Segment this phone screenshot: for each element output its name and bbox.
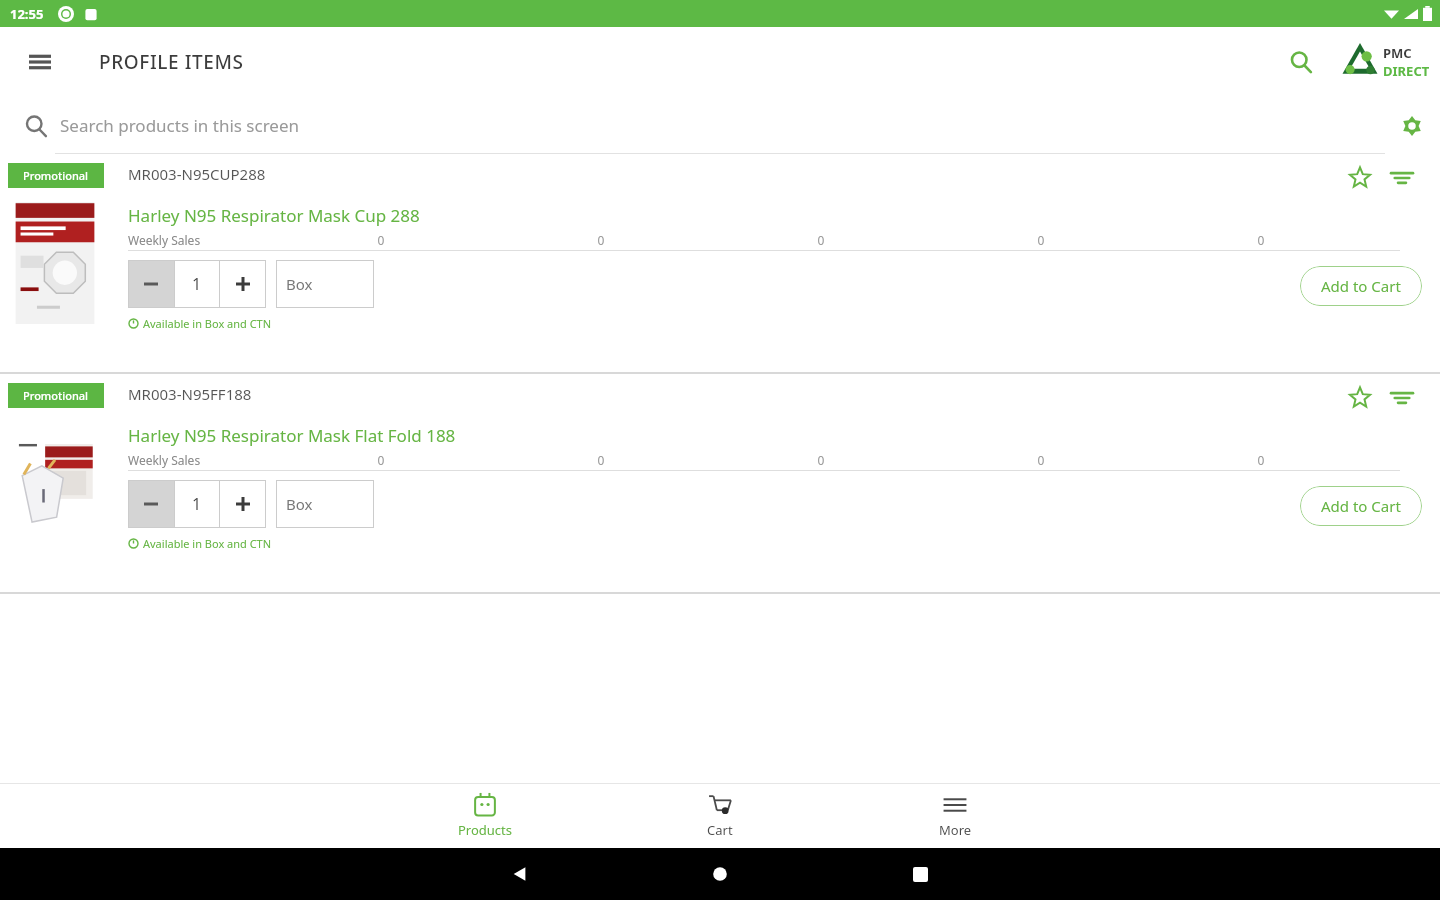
staticText: PMC: [1383, 44, 1412, 62]
staticText: Weekly Sales: [128, 452, 201, 468]
staticText: Available in Box and CTN: [143, 316, 272, 331]
staticText: PROFILE ITEMS: [99, 49, 244, 75]
staticText: 0: [366, 452, 396, 468]
button[interactable]: Filter: [1384, 380, 1420, 416]
staticText: MR003-N95FF188: [128, 384, 252, 404]
staticText: 0: [806, 452, 836, 468]
button[interactable]: Box: [276, 480, 374, 528]
staticText: 0: [1026, 232, 1056, 248]
button[interactable]: PMC Direct logo: [1341, 43, 1430, 81]
button[interactable]: Promotional: [8, 163, 104, 188]
staticText: Add to Cart: [1321, 496, 1401, 516]
staticText: 0: [1246, 232, 1276, 248]
staticText: 0: [1026, 452, 1056, 468]
staticText: Harley N95 Respirator Mask Cup 288: [128, 204, 420, 227]
staticText: 12:55: [10, 5, 44, 23]
staticText: Search products in this screen: [60, 114, 300, 137]
staticText: Harley N95 Respirator Mask Flat Fold 188: [128, 424, 456, 447]
staticText: 1: [192, 273, 202, 295]
button[interactable]: More: [900, 783, 1010, 848]
staticText: More: [939, 821, 972, 839]
staticText: 0: [586, 452, 616, 468]
staticText: Available in Box and CTN: [143, 536, 272, 551]
button[interactable]: Home: [700, 854, 740, 894]
button[interactable]: Decrease quantity: [128, 480, 174, 528]
button[interactable]: Increase quantity: [220, 480, 266, 528]
button[interactable]: Decrease quantity: [128, 260, 174, 308]
staticText: Box: [286, 274, 313, 294]
button[interactable]: Filter: [1384, 160, 1420, 196]
button[interactable]: Increase quantity: [220, 260, 266, 308]
button[interactable]: Promotional: [8, 383, 104, 408]
staticText: Cart: [707, 821, 733, 839]
button[interactable]: Menu: [18, 40, 62, 84]
staticText: DIRECT: [1383, 62, 1430, 80]
staticText: 1: [192, 493, 202, 515]
button[interactable]: Add to Cart: [1300, 266, 1422, 306]
button[interactable]: Products: [430, 783, 540, 848]
button[interactable]: Favorite: [1342, 160, 1378, 196]
button[interactable]: Search: [16, 106, 56, 146]
staticText: 0: [806, 232, 836, 248]
staticText: Box: [286, 494, 313, 514]
button[interactable]: Settings: [1392, 106, 1432, 146]
button[interactable]: Box: [276, 260, 374, 308]
button[interactable]: Back: [500, 854, 540, 894]
staticText: Products: [458, 821, 513, 839]
button[interactable]: Favorite: [1342, 380, 1378, 416]
button[interactable]: Cart: [665, 783, 775, 848]
staticText: Add to Cart: [1321, 276, 1401, 296]
button[interactable]: Search: [1280, 41, 1322, 83]
staticText: 0: [586, 232, 616, 248]
staticText: MR003-N95CUP288: [128, 164, 266, 184]
button[interactable]: Recent apps: [900, 854, 940, 894]
staticText: 0: [366, 232, 396, 248]
staticText: 0: [1246, 452, 1276, 468]
staticText: Promotional: [23, 168, 89, 183]
button[interactable]: Add to Cart: [1300, 486, 1422, 526]
staticText: Weekly Sales: [128, 232, 201, 248]
staticText: Promotional: [23, 388, 89, 403]
